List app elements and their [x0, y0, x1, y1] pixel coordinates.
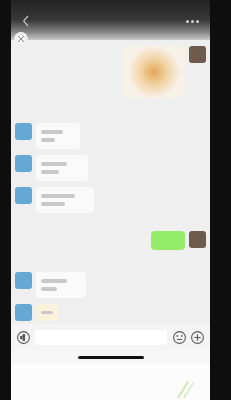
- button[interactable]: Back: [17, 12, 35, 30]
- button[interactable]: [15, 272, 202, 298]
- button[interactable]: More options: [181, 16, 204, 27]
- button[interactable]: [15, 187, 202, 213]
- button[interactable]: [15, 123, 202, 149]
- button[interactable]: [15, 155, 202, 181]
- button[interactable]: [15, 304, 202, 321]
- button[interactable]: [19, 231, 206, 250]
- button[interactable]: Voice input: [16, 330, 31, 345]
- button[interactable]: [19, 46, 206, 98]
- button[interactable]: More actions: [190, 330, 205, 345]
- button[interactable]: Emoji: [172, 330, 187, 345]
- button[interactable]: Close: [14, 32, 28, 46]
